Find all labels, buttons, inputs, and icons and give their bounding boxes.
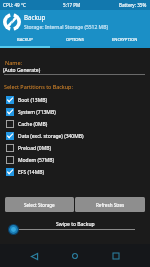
staticText: Battery: 35% <box>119 2 147 8</box>
staticText: Boot (13MB) <box>18 97 47 104</box>
button[interactable]: System (713MB) <box>0 106 150 118</box>
button[interactable]: Preload (0MB) <box>0 142 150 154</box>
button[interactable]: Back <box>26 248 42 264</box>
staticText: Modem (57MB) <box>18 157 54 164</box>
button[interactable]: Swipe to Backup <box>0 214 150 242</box>
button[interactable]: Modem (57MB) <box>0 154 150 166</box>
staticText: Data (excl. storage) (340MB) <box>18 133 84 140</box>
button[interactable]: Data (excl. storage) (340MB) <box>0 130 150 142</box>
staticText: 5:17 PM <box>63 2 81 8</box>
staticText: (Auto Generate) <box>3 67 41 74</box>
staticText: Swipe to Backup <box>56 221 95 228</box>
button[interactable]: Select Storage <box>5 197 74 212</box>
staticText: CPU: 49 °C <box>3 2 26 8</box>
staticText: Storage: Internal Storage (5512 MB) <box>24 24 108 31</box>
staticText: EFS (14MB) <box>18 169 44 176</box>
staticText: Refresh Sizes <box>96 202 125 208</box>
staticText: BACKUP <box>17 37 33 43</box>
staticText: Cache (0MB) <box>18 121 48 128</box>
staticText: Preload (0MB) <box>18 145 51 152</box>
button[interactable]: Home <box>67 248 83 264</box>
button[interactable]: Refresh Sizes <box>75 197 145 212</box>
button[interactable]: Recent apps <box>108 248 124 264</box>
staticText: ENCRYPTION <box>112 37 138 43</box>
button[interactable]: Boot (13MB) <box>0 94 150 106</box>
button[interactable]: BACKUP <box>0 34 50 46</box>
staticText: OPTIONS <box>66 37 84 43</box>
button[interactable]: ENCRYPTION <box>100 34 150 46</box>
button[interactable]: Cache (0MB) <box>0 118 150 130</box>
staticText: Select Storage <box>24 202 55 208</box>
button[interactable]: EFS (14MB) <box>0 166 150 178</box>
staticText: Select Partitions to Backup: <box>4 83 73 90</box>
staticText: System (713MB) <box>18 109 56 116</box>
staticText: Backup <box>24 13 46 21</box>
staticText: Name: <box>5 59 22 66</box>
button[interactable]: OPTIONS <box>50 34 100 46</box>
